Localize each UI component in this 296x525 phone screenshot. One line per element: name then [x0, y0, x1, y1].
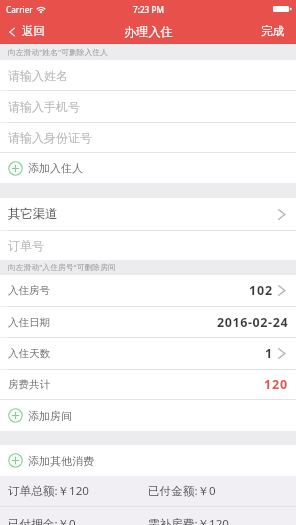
- button[interactable]: 添加房间: [0, 400, 296, 431]
- button[interactable]: 请输入姓名: [0, 60, 296, 90]
- button[interactable]: 房费共计: [0, 370, 296, 399]
- button[interactable]: 请输入手机号: [0, 91, 296, 122]
- staticText: 添加房间: [28, 409, 72, 423]
- button[interactable]: 入住日期: [0, 307, 296, 337]
- staticText: 已付押金:￥0: [8, 516, 148, 525]
- button[interactable]: 入住天数: [0, 338, 296, 369]
- staticText: 向左滑动"姓名"可删除入住人: [8, 47, 108, 58]
- staticText: 入住日期: [8, 316, 50, 329]
- button[interactable]: 添加其他消费: [0, 445, 296, 476]
- staticText: 向左滑动"入住房号"可删除房间: [8, 262, 116, 273]
- staticText: 添加其他消费: [28, 454, 94, 468]
- staticText: 7:23 PM: [133, 4, 164, 15]
- staticText: 1: [265, 345, 274, 362]
- staticText: 请输入手机号: [8, 99, 80, 114]
- staticText: 需补房费:￥120: [148, 516, 229, 525]
- staticText: 添加入住人: [28, 161, 83, 175]
- staticText: 订单号: [8, 238, 44, 253]
- button[interactable]: 入住房号: [0, 275, 296, 306]
- staticText: 其它渠道: [8, 206, 58, 222]
- staticText: 120: [264, 376, 289, 393]
- staticText: 订单总额:￥120: [8, 483, 148, 499]
- staticText: 办理入住: [124, 24, 173, 39]
- button[interactable]: 返回: [0, 21, 52, 42]
- staticText: 已付金额:￥0: [148, 483, 216, 499]
- staticText: 请输入身份证号: [8, 130, 92, 145]
- staticText: 入住天数: [8, 347, 50, 360]
- button[interactable]: 完成: [253, 21, 296, 42]
- staticText: 2016-02-24: [217, 314, 289, 331]
- staticText: Carrier: [6, 4, 33, 15]
- staticText: 请输入姓名: [8, 68, 68, 83]
- staticText: 102: [249, 282, 274, 299]
- staticText: 房费共计: [8, 378, 50, 391]
- button[interactable]: 其它渠道: [0, 198, 296, 230]
- staticText: 返回: [22, 24, 46, 39]
- button[interactable]: 添加入住人: [0, 153, 296, 183]
- button[interactable]: 请输入身份证号: [0, 123, 296, 152]
- staticText: 完成: [261, 24, 285, 39]
- button[interactable]: 订单号: [0, 231, 296, 260]
- staticText: 入住房号: [8, 284, 50, 297]
